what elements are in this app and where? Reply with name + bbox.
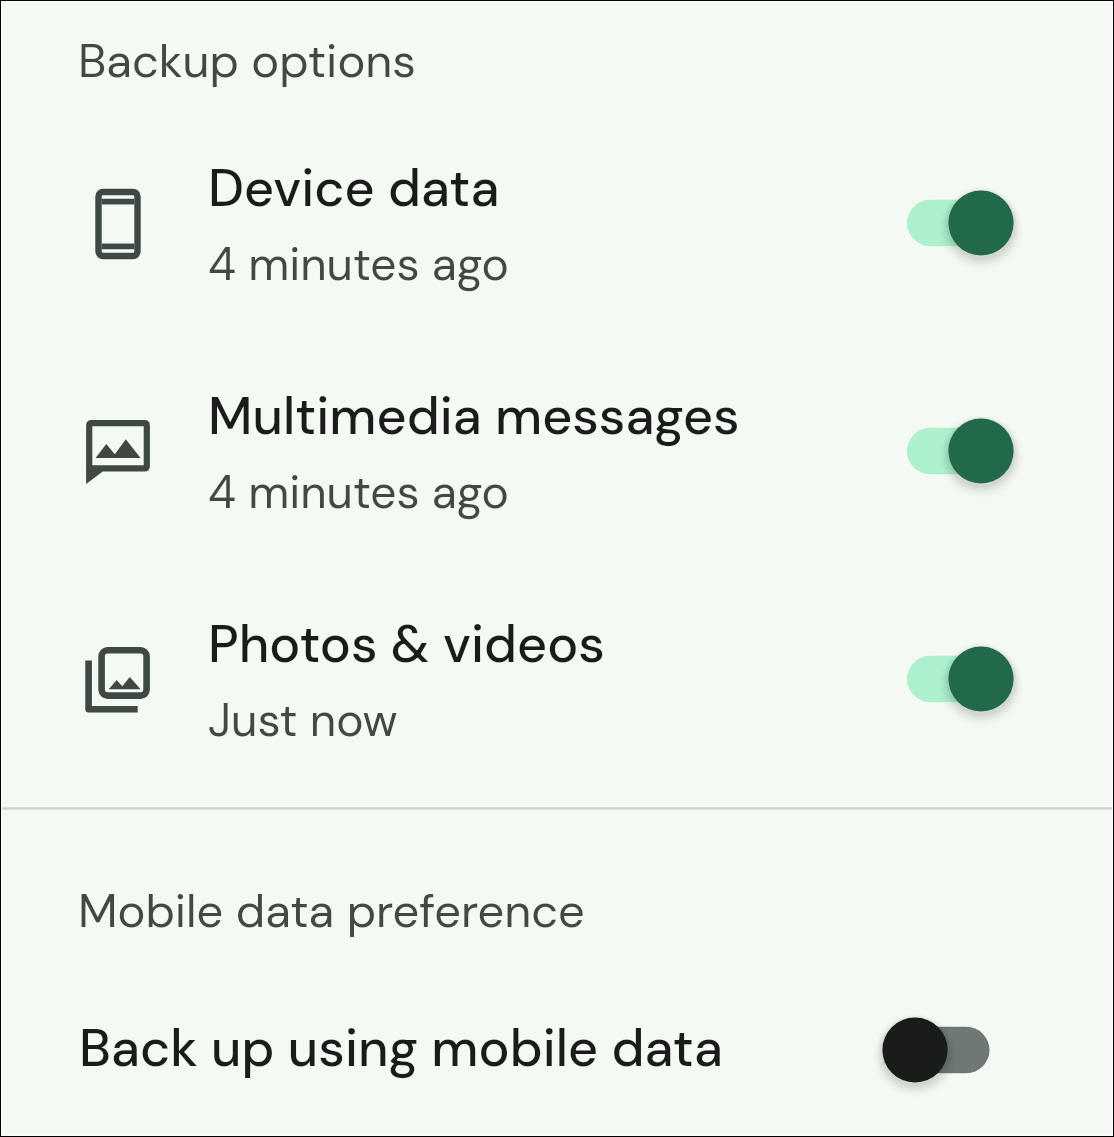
button[interactable]: Back up using mobile data — [2, 990, 1112, 1115]
other: Multimedia messages — [78, 412, 158, 492]
staticText: 4 minutes ago — [208, 234, 509, 294]
staticText: Device data — [208, 154, 500, 222]
button[interactable]: Photos and videos — [2, 568, 1112, 796]
staticText: Photos & videos — [208, 610, 605, 678]
staticText: Mobile data preference — [78, 880, 585, 941]
staticText: 4 minutes ago — [208, 462, 509, 522]
staticText: Just now — [208, 690, 398, 750]
button[interactable]: Device data — [2, 112, 1112, 340]
staticText: Multimedia messages — [208, 382, 740, 450]
staticText: Backup options — [78, 30, 416, 91]
other: Device data — [78, 184, 158, 264]
button[interactable]: Switch on — [867, 411, 1030, 491]
button[interactable]: Multimedia messages — [2, 340, 1112, 568]
button[interactable]: Switch on — [867, 183, 1030, 263]
button[interactable]: Switch off — [867, 1010, 1030, 1090]
staticText: Back up using mobile data — [79, 1014, 723, 1082]
button[interactable]: Switch on — [867, 639, 1030, 719]
other: Photos and videos — [78, 640, 158, 720]
